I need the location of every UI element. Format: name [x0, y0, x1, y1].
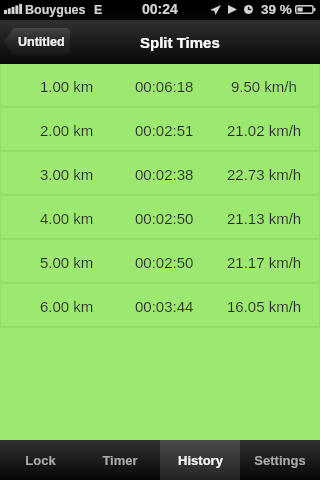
staticText: 21.02 km/h: [227, 122, 302, 139]
button[interactable]: 5.00 km: [0, 240, 320, 284]
staticText: Lock: [25, 453, 56, 468]
staticText: 21.17 km/h: [227, 254, 302, 271]
button[interactable]: Settings: [240, 440, 320, 480]
staticText: 5.00 km: [40, 254, 94, 271]
button[interactable]: 1.00 km: [0, 64, 320, 108]
staticText: 00:06:18: [135, 78, 194, 95]
button[interactable]: History: [160, 440, 240, 480]
button[interactable]: 2.00 km: [0, 108, 320, 152]
button[interactable]: 4.00 km: [0, 196, 320, 240]
staticText: E: [94, 3, 103, 17]
staticText: Split Times: [140, 34, 220, 51]
staticText: 22.73 km/h: [227, 166, 302, 183]
staticText: Untitled: [18, 35, 65, 49]
button[interactable]: Untitled: [4, 28, 70, 55]
staticText: 6.00 km: [40, 298, 94, 315]
button[interactable]: Timer: [80, 440, 160, 480]
staticText: 4.00 km: [40, 210, 94, 227]
staticText: 00:02:50: [135, 254, 194, 271]
staticText: Settings: [254, 453, 306, 468]
staticText: Bouygues: [25, 3, 86, 17]
button[interactable]: 3.00 km: [0, 152, 320, 196]
staticText: Timer: [102, 453, 138, 468]
staticText: 16.05 km/h: [227, 298, 302, 315]
staticText: 00:02:38: [135, 166, 194, 183]
staticText: 3.00 km: [40, 166, 94, 183]
staticText: 39 %: [261, 2, 292, 17]
staticText: 9.50 km/h: [231, 78, 297, 95]
button[interactable]: Lock: [0, 440, 80, 480]
button[interactable]: 6.00 km: [0, 284, 320, 328]
staticText: 1.00 km: [40, 78, 94, 95]
staticText: History: [178, 453, 223, 468]
staticText: 00:24: [142, 1, 178, 17]
staticText: 21.13 km/h: [227, 210, 302, 227]
staticText: 00:02:50: [135, 210, 194, 227]
staticText: 2.00 km: [40, 122, 94, 139]
staticText: 00:03:44: [135, 298, 194, 315]
staticText: 00:02:51: [135, 122, 194, 139]
